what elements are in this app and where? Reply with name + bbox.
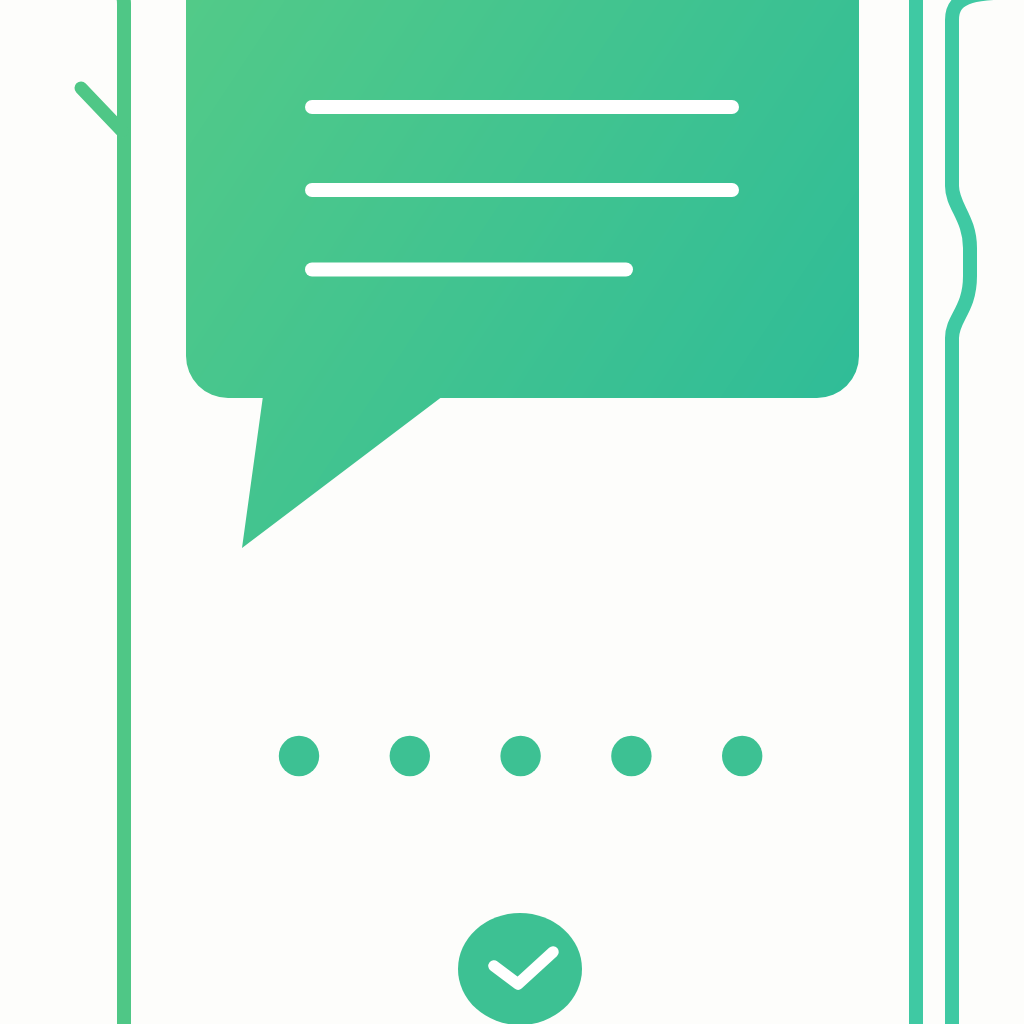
button[interactable]: Page 1 <box>277 734 319 776</box>
button[interactable]: Message <box>186 0 859 398</box>
button[interactable]: Page 4 <box>609 734 651 776</box>
button[interactable]: Page 2 <box>388 734 430 776</box>
button[interactable]: Page 3 <box>499 734 541 776</box>
button[interactable]: Confirm <box>458 913 582 1024</box>
button[interactable]: Page 5 <box>720 734 762 776</box>
